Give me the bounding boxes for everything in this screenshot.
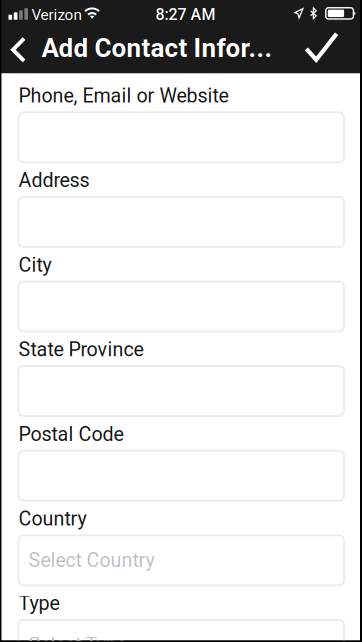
staticText: Phone, Email or Website xyxy=(18,84,228,107)
staticText: Verizon xyxy=(31,6,81,24)
button[interactable] xyxy=(18,112,344,162)
staticText: Select Country xyxy=(28,549,154,572)
button[interactable]: Back xyxy=(0,27,36,72)
staticText: City xyxy=(18,253,51,276)
button[interactable]: Select Type xyxy=(18,620,344,642)
staticText: Add Contact Infor... xyxy=(41,33,272,63)
staticText: Postal Code xyxy=(18,423,123,446)
staticText: Address xyxy=(18,169,89,192)
button[interactable] xyxy=(18,281,344,331)
button[interactable]: Save xyxy=(295,24,347,69)
staticText: State Province xyxy=(18,338,143,361)
staticText: Type xyxy=(18,592,59,615)
button[interactable] xyxy=(18,197,344,247)
button[interactable]: Select Country xyxy=(18,535,344,585)
staticText: Country xyxy=(18,507,86,530)
button[interactable] xyxy=(18,366,344,416)
button[interactable] xyxy=(18,451,344,501)
staticText: 8:27 AM xyxy=(155,5,215,24)
staticText: Select Type xyxy=(28,633,126,642)
